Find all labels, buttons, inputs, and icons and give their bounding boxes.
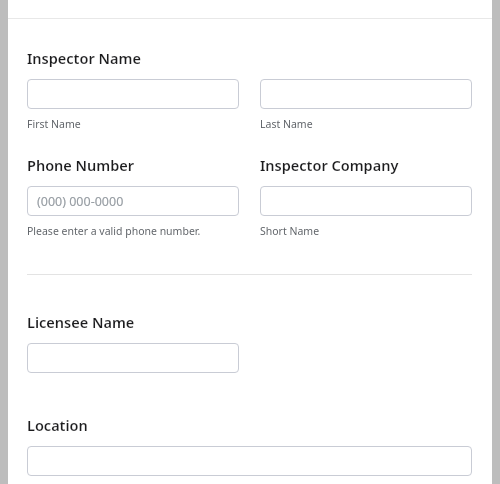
- staticText: Licensee Name: [27, 312, 135, 332]
- staticText: Inspector Company: [260, 155, 399, 175]
- button[interactable]: Last Name: [260, 79, 472, 109]
- staticText: Short Name: [260, 224, 320, 238]
- staticText: Location: [27, 415, 88, 435]
- staticText: Last Name: [260, 117, 313, 131]
- staticText: (000) 000-0000: [37, 193, 124, 210]
- button[interactable]: First Name: [27, 79, 239, 109]
- button[interactable]: Location: [27, 446, 472, 476]
- staticText: Please enter a valid phone number.: [27, 224, 201, 238]
- staticText: First Name: [27, 117, 81, 131]
- button[interactable]: Phone Number: [27, 186, 239, 216]
- button[interactable]: Inspector Company: [260, 186, 472, 216]
- staticText: Phone Number: [27, 155, 135, 175]
- button[interactable]: Licensee Name: [27, 343, 239, 373]
- staticText: Inspector Name: [27, 48, 141, 68]
